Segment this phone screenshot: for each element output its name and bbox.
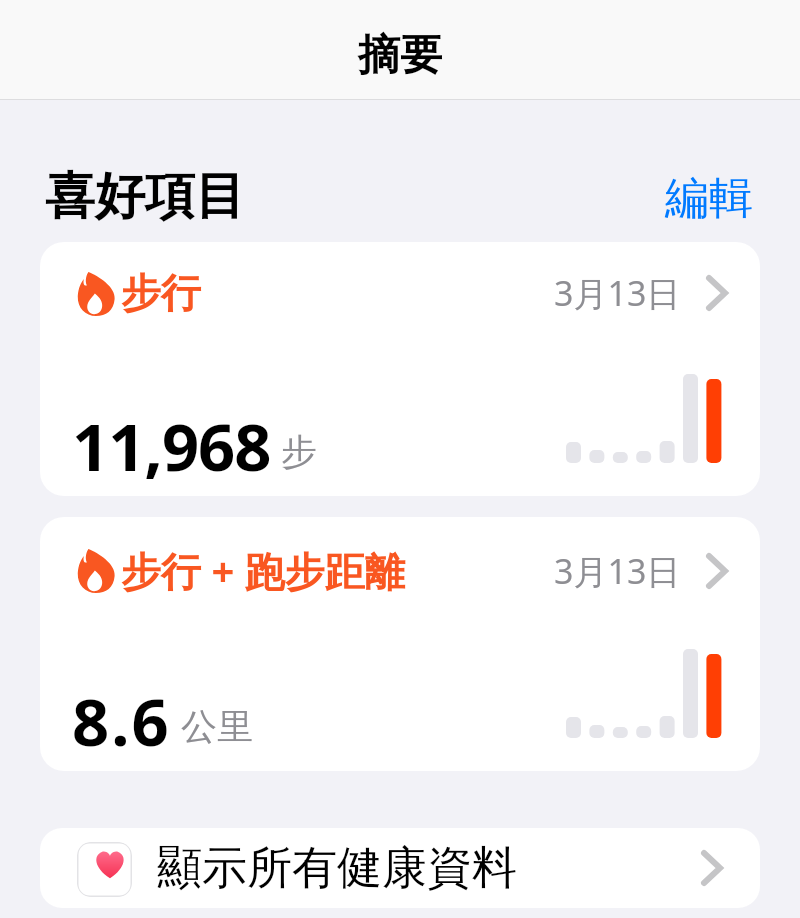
staticText: 步行 + 跑步距離 bbox=[121, 543, 405, 598]
staticText: 摘要 bbox=[358, 29, 442, 82]
button[interactable]: 步行 bbox=[40, 242, 760, 496]
staticText: 3月13日 bbox=[554, 270, 681, 316]
staticText: 3月13日 bbox=[554, 548, 681, 594]
staticText: 8.6 bbox=[72, 677, 171, 766]
staticText: 11,968 bbox=[72, 402, 271, 491]
staticText: 步 bbox=[281, 429, 317, 474]
staticText: 顯示所有健康資料 bbox=[157, 840, 517, 897]
staticText: 喜好項目 bbox=[45, 165, 245, 228]
button[interactable]: 步行 + 跑步距離 bbox=[40, 517, 760, 771]
staticText: 步行 bbox=[121, 268, 201, 318]
button[interactable]: 編輯 bbox=[665, 171, 760, 226]
button[interactable]: 顯示所有健康資料 bbox=[40, 828, 760, 908]
staticText: 公里 bbox=[181, 704, 253, 749]
